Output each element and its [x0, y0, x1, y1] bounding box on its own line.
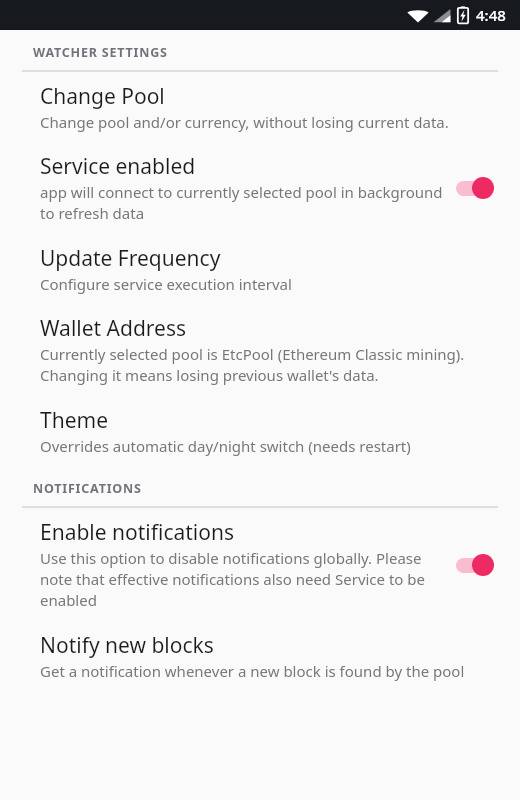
- staticText: Theme: [40, 406, 108, 435]
- staticText: 4:48: [476, 5, 506, 25]
- staticText: app will connect to currently selected p…: [40, 182, 446, 224]
- staticText: WATCHER SETTINGS: [33, 44, 168, 61]
- staticText: Configure service execution interval: [40, 274, 292, 294]
- staticText: Notify new blocks: [40, 631, 214, 660]
- button[interactable]: Switch on: [454, 174, 500, 202]
- button[interactable]: Theme: [0, 396, 520, 466]
- staticText: Update Frequency: [40, 244, 221, 273]
- staticText: Change pool and/or currency, without los…: [40, 112, 449, 132]
- button[interactable]: Service enabled: [0, 142, 520, 234]
- staticText: Overrides automatic day/night switch (ne…: [40, 436, 411, 456]
- button[interactable]: Update Frequency: [0, 234, 520, 304]
- staticText: Enable notifications: [40, 518, 234, 547]
- staticText: Currently selected pool is EtcPool (Ethe…: [40, 344, 500, 386]
- button[interactable]: Wallet Address: [0, 304, 520, 396]
- staticText: NOTIFICATIONS: [33, 480, 142, 497]
- staticText: Wallet Address: [40, 314, 187, 343]
- button[interactable]: Change Pool: [0, 72, 520, 142]
- button[interactable]: Enable notifications: [0, 508, 520, 621]
- staticText: Use this option to disable notifications…: [40, 548, 446, 611]
- button[interactable]: Notify new blocks: [0, 621, 520, 691]
- button[interactable]: Switch on: [454, 551, 500, 579]
- staticText: Change Pool: [40, 82, 165, 111]
- staticText: Get a notification whenever a new block …: [40, 661, 465, 681]
- staticText: Service enabled: [40, 152, 196, 181]
